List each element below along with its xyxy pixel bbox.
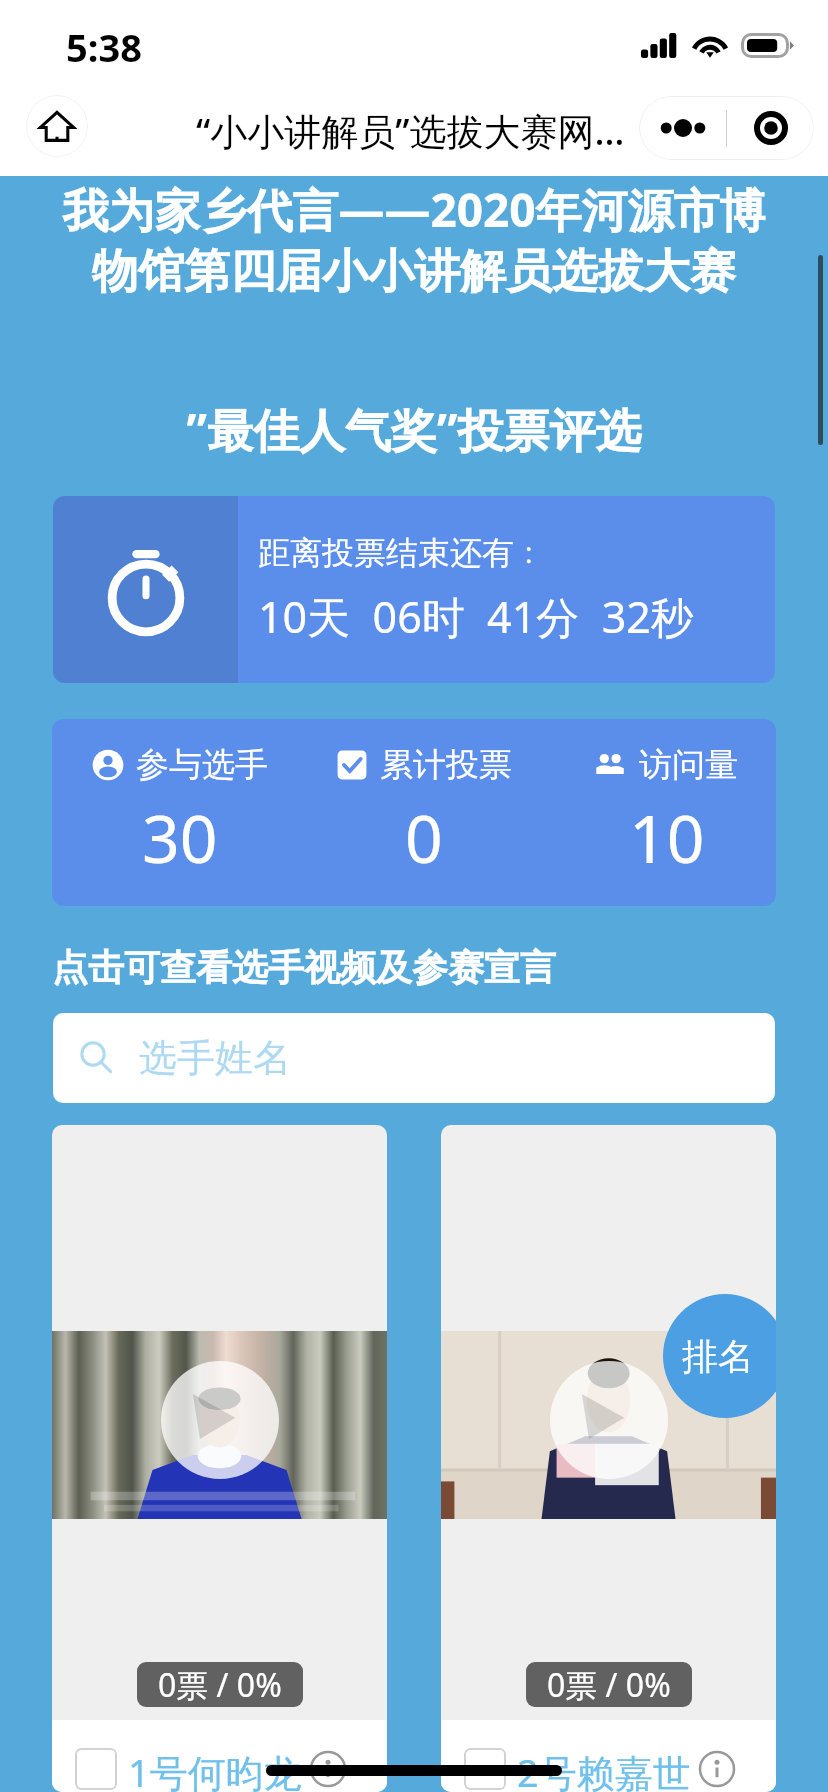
staticText: 累计投票	[380, 744, 512, 786]
button[interactable]: Ranking	[663, 1294, 776, 1418]
staticText: 距离投票结束还有﹕	[258, 533, 546, 573]
staticText: 10天 06时 41分 32秒	[258, 587, 694, 646]
button[interactable]: Select 1号何昀龙	[75, 1748, 117, 1790]
button[interactable]: 距离投票结束还有﹕	[53, 496, 775, 683]
button[interactable]: Info	[698, 1750, 736, 1788]
button[interactable]: Info	[309, 1750, 347, 1788]
staticText: 10	[629, 792, 705, 882]
button[interactable]: Play video	[161, 1361, 279, 1479]
staticText: 选手姓名	[139, 1034, 291, 1082]
button[interactable]: 访问量	[546, 744, 776, 882]
button[interactable]: Close	[727, 96, 814, 160]
staticText: “小小讲解员”选拔大赛网…	[196, 105, 625, 156]
button[interactable]: Play video	[550, 1361, 668, 1479]
button[interactable]: More	[639, 96, 726, 160]
staticText: 30	[142, 792, 218, 882]
staticText: 点击可查看选手视频及参赛宣言	[52, 945, 556, 990]
button[interactable]: Select 2号赖嘉世	[464, 1748, 506, 1790]
button[interactable]: 累计投票	[303, 744, 544, 882]
staticText: 0票 / 0%	[158, 1663, 282, 1707]
button[interactable]: Play video	[52, 1125, 387, 1792]
staticText: 0票 / 0%	[547, 1663, 671, 1707]
staticText: ”最佳人气奖”投票评选	[0, 398, 828, 461]
button[interactable]: Home	[26, 95, 88, 157]
staticText: 2号赖嘉世	[517, 1746, 691, 1792]
staticText: 5:38	[66, 21, 142, 73]
button[interactable]: Play video	[441, 1125, 776, 1792]
staticText: 参与选手	[136, 744, 268, 786]
button[interactable]: 选手姓名	[53, 1013, 775, 1103]
staticText: 1号何昀龙	[128, 1746, 302, 1792]
staticText: 我为家乡代言——2020年河源市博 物馆第四届小小讲解员选拔大赛	[0, 178, 828, 300]
button[interactable]: 参与选手	[59, 744, 301, 882]
staticText: 访问量	[639, 744, 738, 786]
staticText: 0	[405, 792, 443, 882]
staticText: 排名	[682, 1334, 754, 1379]
